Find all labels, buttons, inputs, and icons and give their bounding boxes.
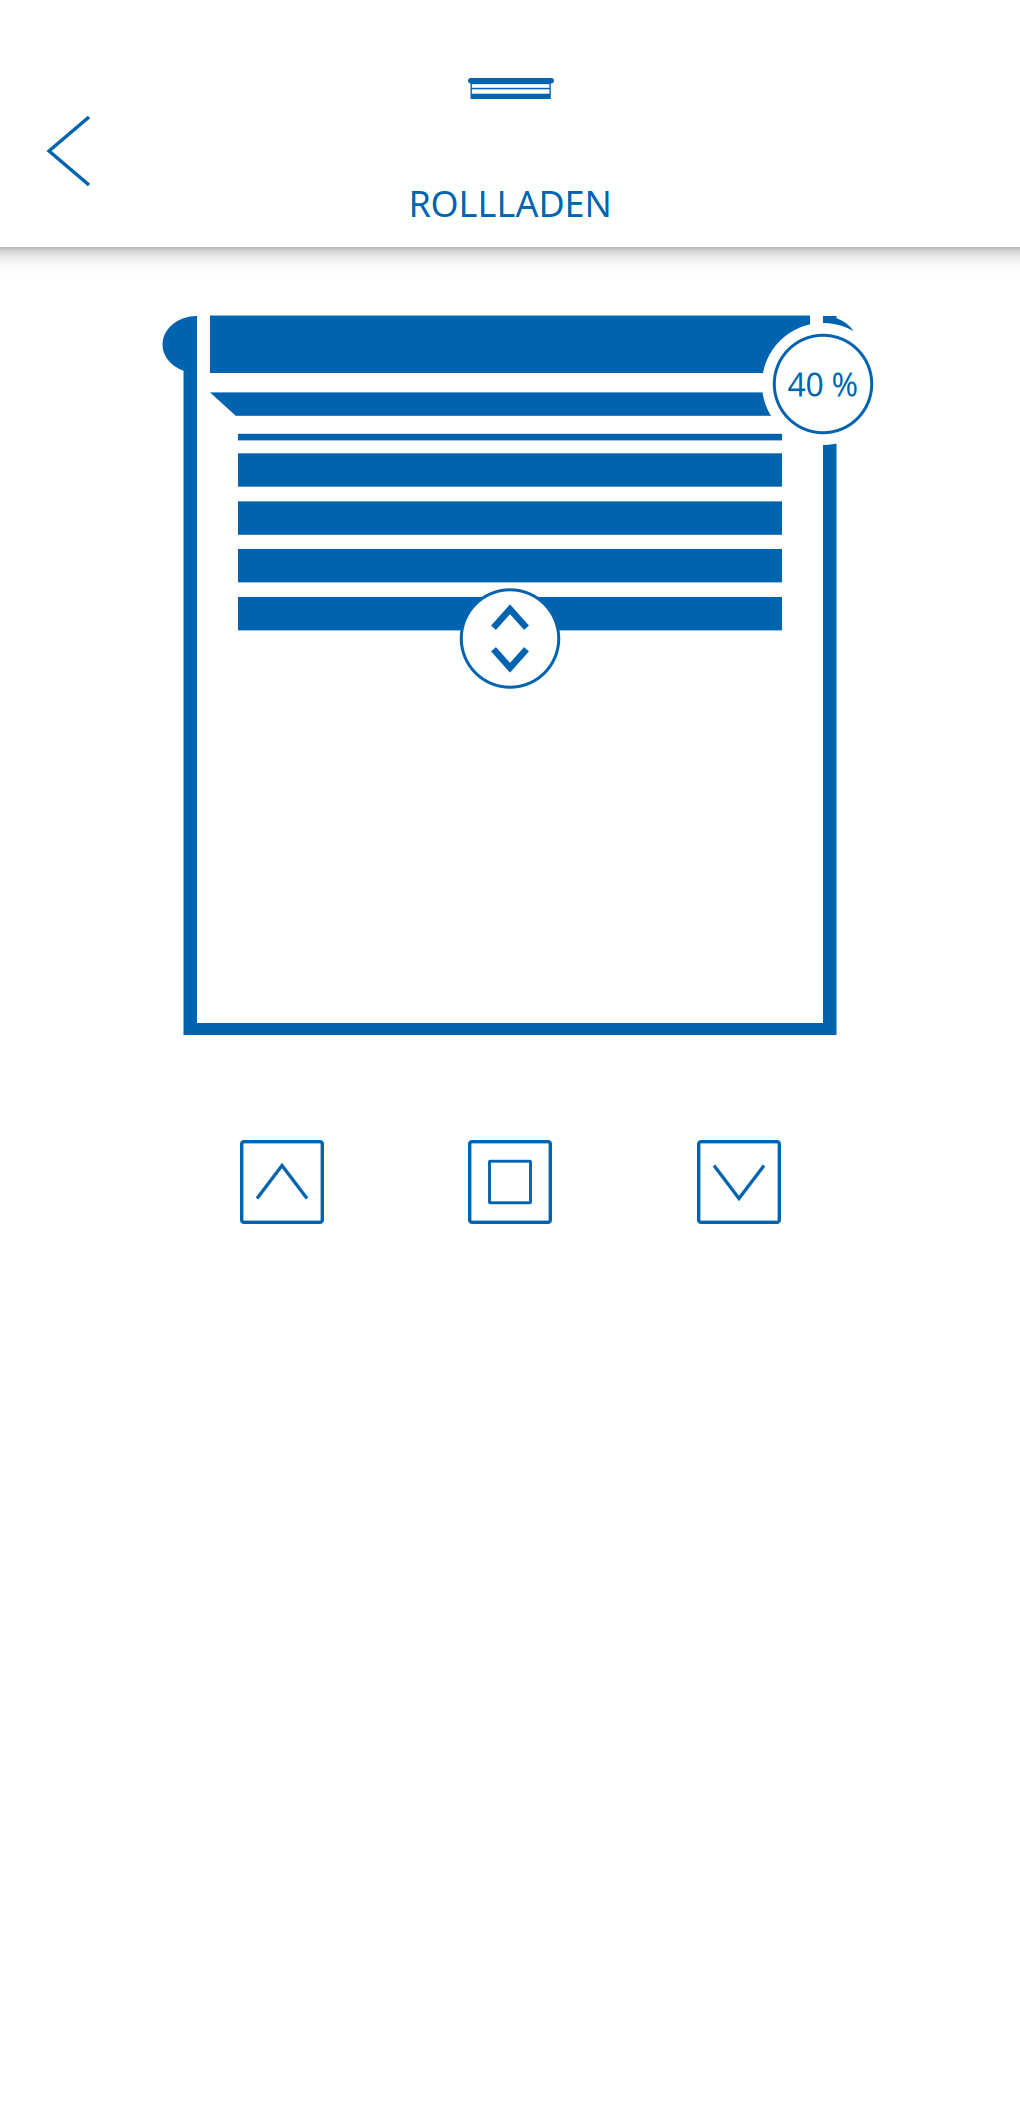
button[interactable]: Close <box>697 1140 781 1224</box>
staticText: 40 % <box>787 363 858 405</box>
button[interactable]: Adjust position <box>460 588 560 688</box>
button[interactable]: Stop <box>468 1140 552 1224</box>
button[interactable]: Open <box>240 1140 324 1224</box>
button[interactable]: Back <box>13 95 125 207</box>
staticText: ROLLLADEN <box>408 179 611 227</box>
